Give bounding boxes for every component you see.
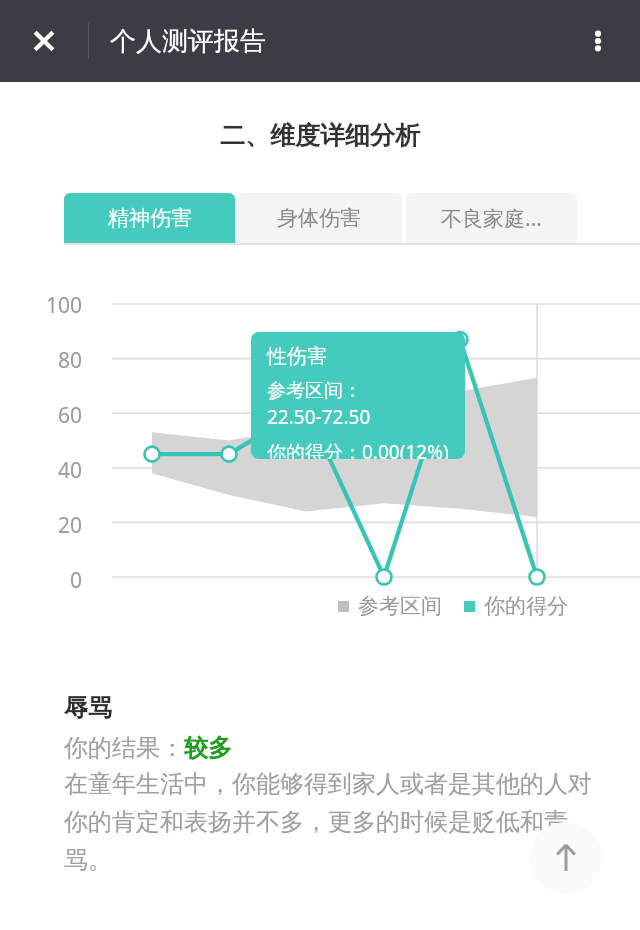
staticText: 参考区间：22.50-72.50 bbox=[267, 379, 465, 430]
button[interactable]: 不良家庭... bbox=[406, 193, 577, 243]
staticText: 个人测评报告 bbox=[110, 25, 266, 58]
staticText: 80 bbox=[0, 346, 82, 375]
button[interactable]: 精神伤害 bbox=[64, 193, 235, 243]
button[interactable]: Close bbox=[20, 17, 68, 65]
staticText: 性伤害 bbox=[267, 344, 327, 369]
staticText: 参考区间 bbox=[358, 593, 442, 619]
staticText: 100 bbox=[0, 291, 82, 320]
staticText: 在童年生活中，你能够得到家人或者是其他的人对你的肯定和表扬并不多，更多的时候是贬… bbox=[64, 769, 600, 876]
staticText: 你的得分 bbox=[484, 593, 568, 619]
button[interactable]: More options bbox=[574, 17, 622, 65]
staticText: 不良家庭... bbox=[441, 204, 542, 233]
staticText: 40 bbox=[0, 456, 82, 485]
staticText: 20 bbox=[0, 511, 82, 540]
button[interactable]: 身体伤害 bbox=[236, 193, 402, 243]
staticText: 二、维度详细分析 bbox=[0, 120, 640, 151]
staticText: 精神伤害 bbox=[108, 205, 192, 231]
staticText: 身体伤害 bbox=[277, 205, 361, 231]
button[interactable]: Scroll to top bbox=[530, 822, 602, 894]
staticText: 0 bbox=[0, 566, 82, 595]
staticText: 你的得分：0.00(12%) bbox=[267, 439, 449, 459]
staticText: 你的结果： bbox=[64, 733, 184, 763]
staticText: 较多 bbox=[184, 733, 232, 763]
staticText: 60 bbox=[0, 401, 82, 430]
staticText: 辱骂 bbox=[64, 693, 112, 723]
